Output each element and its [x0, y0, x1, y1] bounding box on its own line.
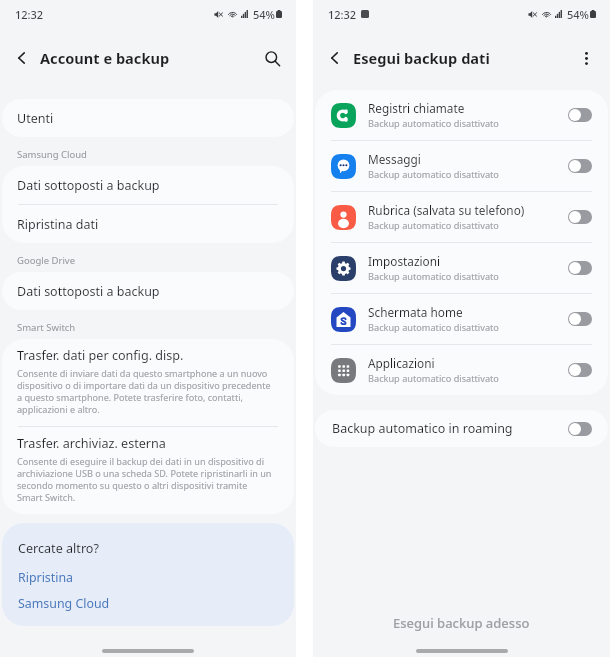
staticText: Backup automatico disattivato: [368, 168, 499, 181]
staticText: Backup automatico disattivato: [368, 372, 499, 385]
staticText: 12:32: [328, 7, 357, 22]
button[interactable]: Schermata home: [315, 294, 608, 344]
staticText: Backup automatico disattivato: [368, 117, 499, 130]
button[interactable]: Toggle: [568, 108, 592, 122]
button[interactable]: Toggle: [568, 159, 592, 173]
button[interactable]: Back: [8, 44, 36, 72]
staticText: Trasfer. archiviaz. esterna: [17, 435, 166, 452]
staticText: Rubrica (salvata su telefono): [368, 202, 525, 218]
staticText: Schermata home: [368, 304, 463, 320]
button[interactable]: Toggle: [568, 422, 592, 436]
staticText: Dati sottoposti a backup: [17, 177, 160, 194]
button[interactable]: Toggle: [568, 261, 592, 275]
staticText: Cercate altro?: [18, 540, 99, 557]
button[interactable]: Trasfer. archiviaz. esterna: [2, 427, 294, 514]
staticText: Samsung Cloud: [18, 595, 110, 612]
button[interactable]: Esegui backup adesso: [313, 606, 610, 640]
staticText: Account e backup: [40, 48, 170, 68]
staticText: Applicazioni: [368, 355, 435, 371]
button[interactable]: Toggle: [568, 312, 592, 326]
staticText: Smart Switch: [17, 321, 76, 334]
button[interactable]: Samsung Cloud: [18, 595, 110, 612]
button[interactable]: Toggle: [568, 363, 592, 377]
staticText: Backup automatico in roaming: [332, 420, 513, 437]
staticText: Backup automatico disattivato: [368, 219, 499, 232]
staticText: Messaggi: [368, 151, 421, 167]
staticText: Ripristina: [18, 569, 74, 586]
button[interactable]: Ripristina: [18, 569, 74, 586]
button[interactable]: Registri chiamate: [315, 90, 608, 140]
button[interactable]: Dati sottoposti a backup: [2, 272, 294, 310]
button[interactable]: Impostazioni: [315, 243, 608, 293]
staticText: Backup automatico disattivato: [368, 270, 499, 283]
staticText: Dati sottoposti a backup: [17, 283, 160, 300]
staticText: Consente di inviare dati da questo smart…: [17, 367, 275, 415]
staticText: Utenti: [17, 110, 54, 127]
staticText: Registri chiamate: [368, 100, 465, 116]
button[interactable]: Applicazioni: [315, 345, 608, 395]
button[interactable]: Rubrica (salvata su telefono): [315, 192, 608, 242]
staticText: Ripristina dati: [17, 216, 99, 233]
staticText: Consente di eseguire il backup dei dati …: [17, 455, 275, 503]
staticText: Esegui backup dati: [353, 48, 490, 68]
button[interactable]: Search: [258, 44, 286, 72]
staticText: Google Drive: [17, 254, 76, 267]
button[interactable]: Backup automatico in roaming: [315, 410, 608, 447]
button[interactable]: Messaggi: [315, 141, 608, 191]
staticText: 12:32: [15, 7, 44, 22]
button[interactable]: Back: [321, 44, 349, 72]
staticText: Backup automatico disattivato: [368, 321, 499, 334]
staticText: Trasfer. dati per config. disp.: [17, 347, 184, 364]
staticText: 54%: [567, 7, 589, 22]
button[interactable]: Ripristina dati: [2, 205, 294, 243]
button[interactable]: Utenti: [2, 99, 294, 137]
button[interactable]: Trasfer. dati per config. disp.: [2, 339, 294, 426]
button[interactable]: Toggle: [568, 210, 592, 224]
staticText: Impostazioni: [368, 253, 441, 269]
staticText: Esegui backup adesso: [393, 614, 530, 632]
staticText: Samsung Cloud: [17, 148, 87, 161]
button[interactable]: More options: [572, 44, 600, 72]
staticText: 54%: [253, 7, 275, 22]
button[interactable]: Dati sottoposti a backup: [2, 166, 294, 204]
